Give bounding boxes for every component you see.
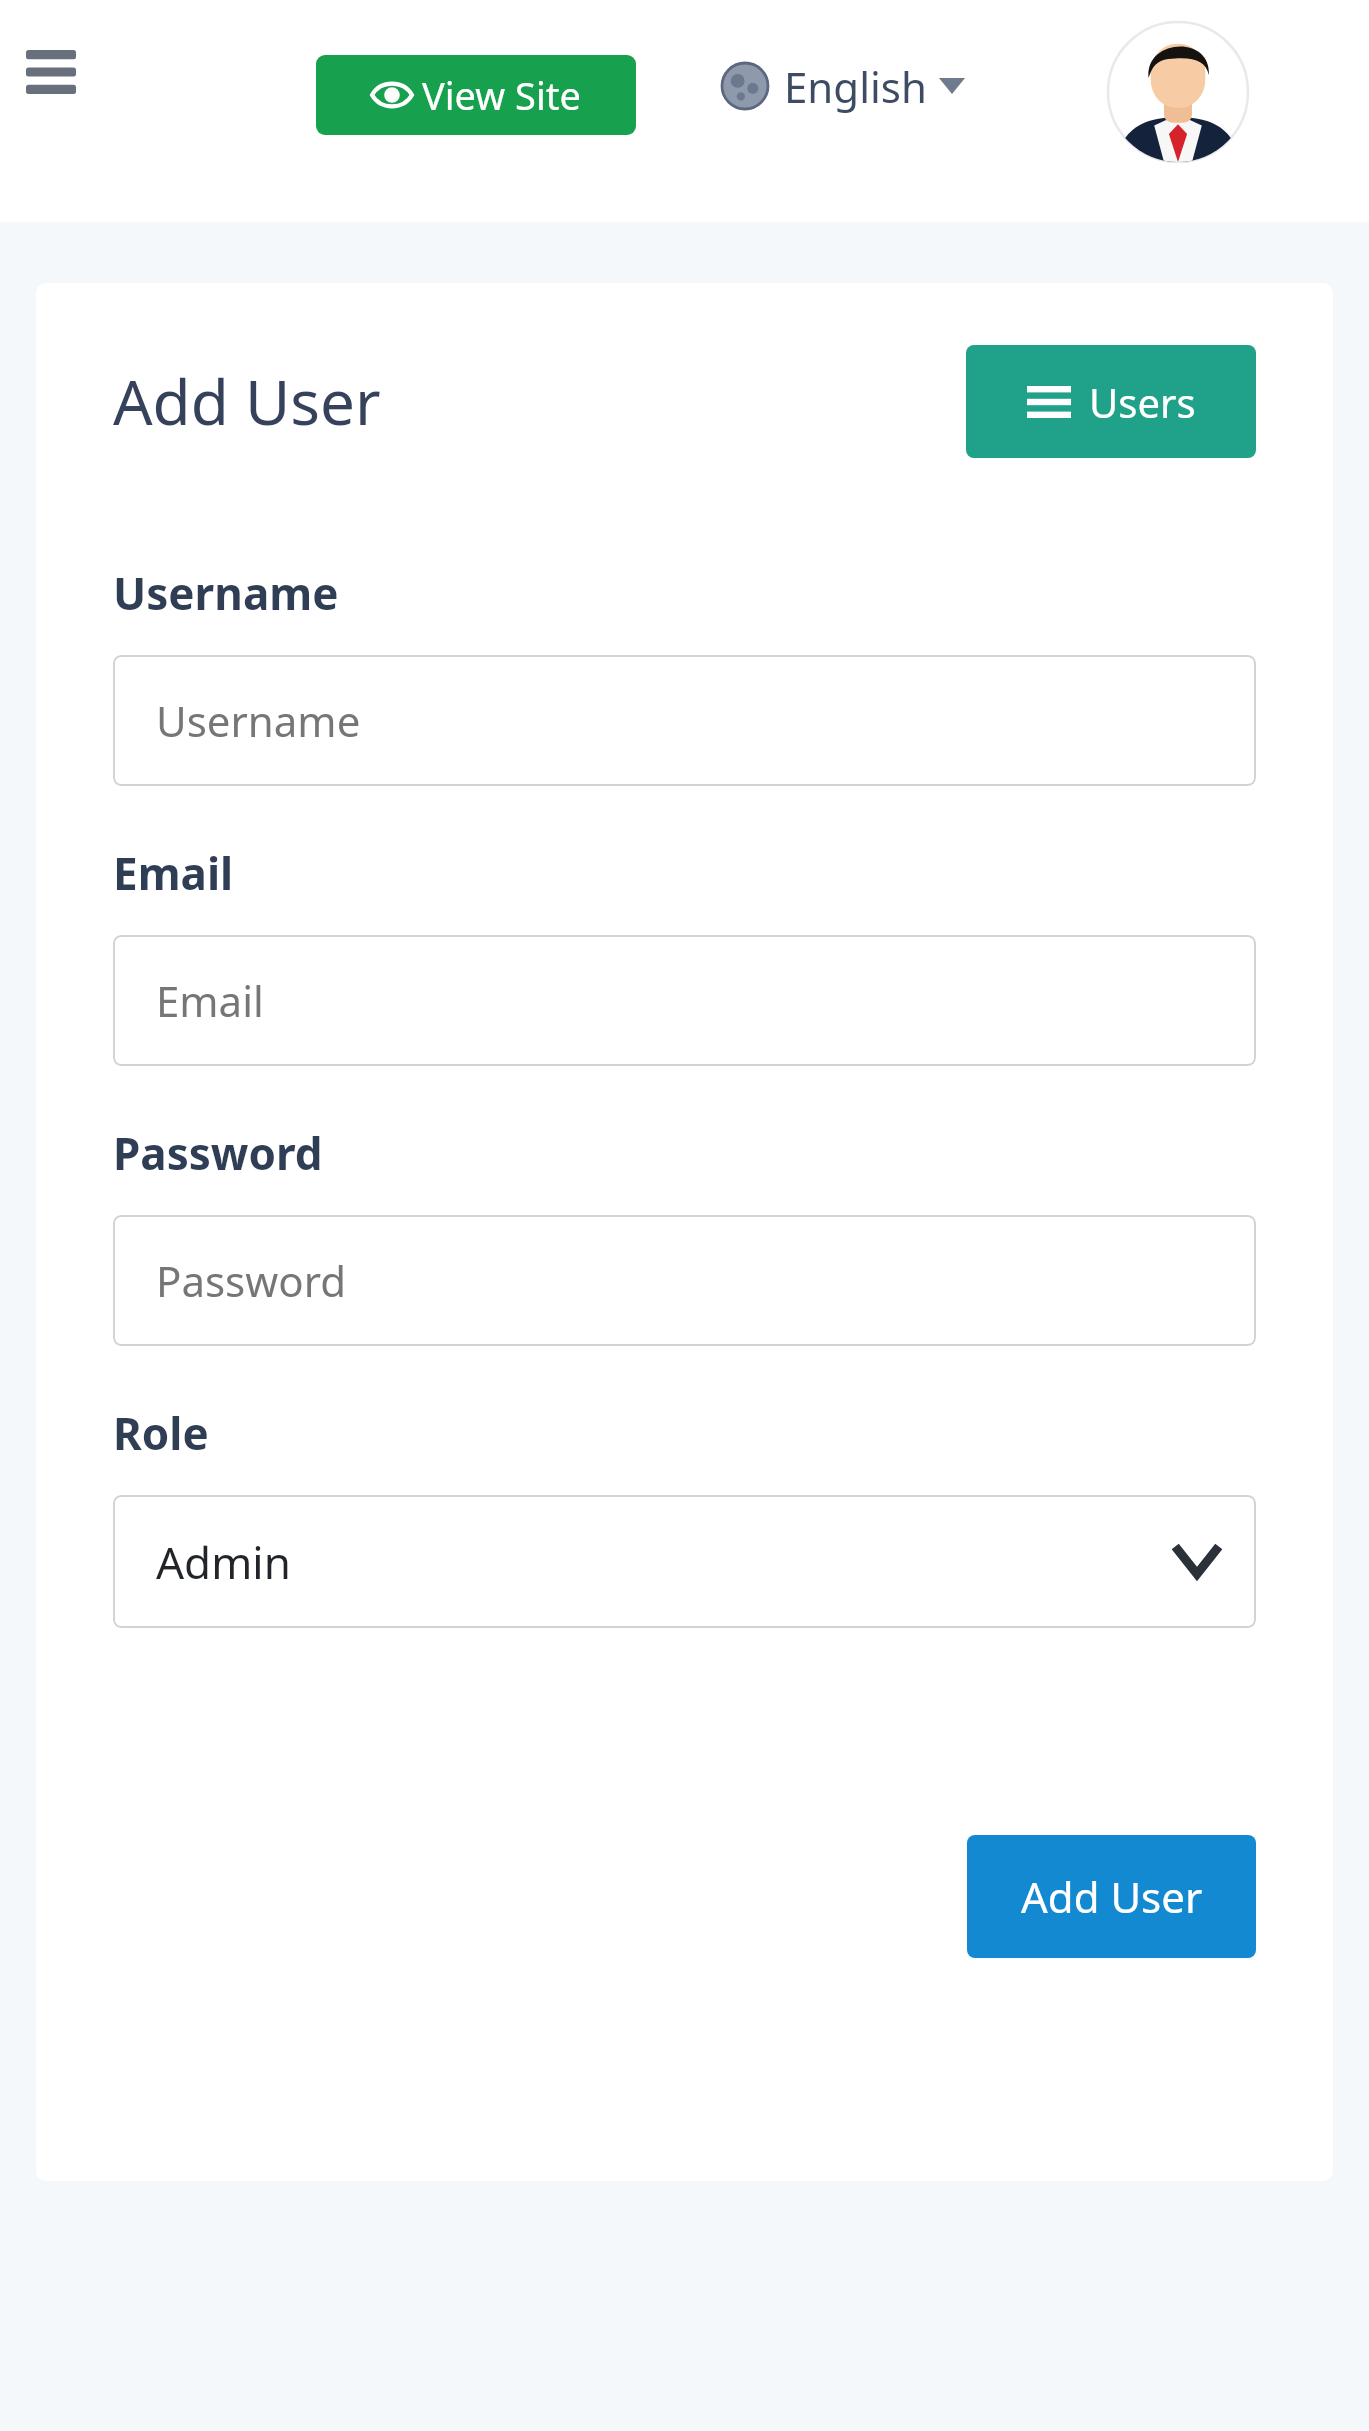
button[interactable]: Admin xyxy=(113,1495,1256,1628)
staticText: Admin xyxy=(156,1532,291,1592)
staticText: Username xyxy=(113,563,339,623)
button[interactable]: Menu xyxy=(18,36,84,108)
staticText: Email xyxy=(156,972,264,1029)
staticText: Users xyxy=(1089,375,1196,429)
staticText: Add User xyxy=(1021,1868,1203,1925)
staticText: Password xyxy=(156,1252,346,1309)
button[interactable]: Add User xyxy=(967,1835,1256,1958)
staticText: Password xyxy=(113,1123,323,1183)
staticText: Username xyxy=(156,692,361,749)
button[interactable]: Username xyxy=(113,655,1256,786)
staticText: Role xyxy=(113,1403,209,1463)
button[interactable]: Email xyxy=(113,935,1256,1066)
staticText: View Site xyxy=(422,69,581,121)
button[interactable]: Users xyxy=(966,345,1256,458)
staticText: Email xyxy=(113,843,234,903)
button[interactable]: View Site xyxy=(316,55,636,135)
button[interactable]: Profile xyxy=(1108,22,1248,162)
button[interactable]: English xyxy=(722,48,965,124)
staticText: Add User xyxy=(113,359,381,443)
button[interactable]: Password xyxy=(113,1215,1256,1346)
staticText: English xyxy=(784,58,927,115)
